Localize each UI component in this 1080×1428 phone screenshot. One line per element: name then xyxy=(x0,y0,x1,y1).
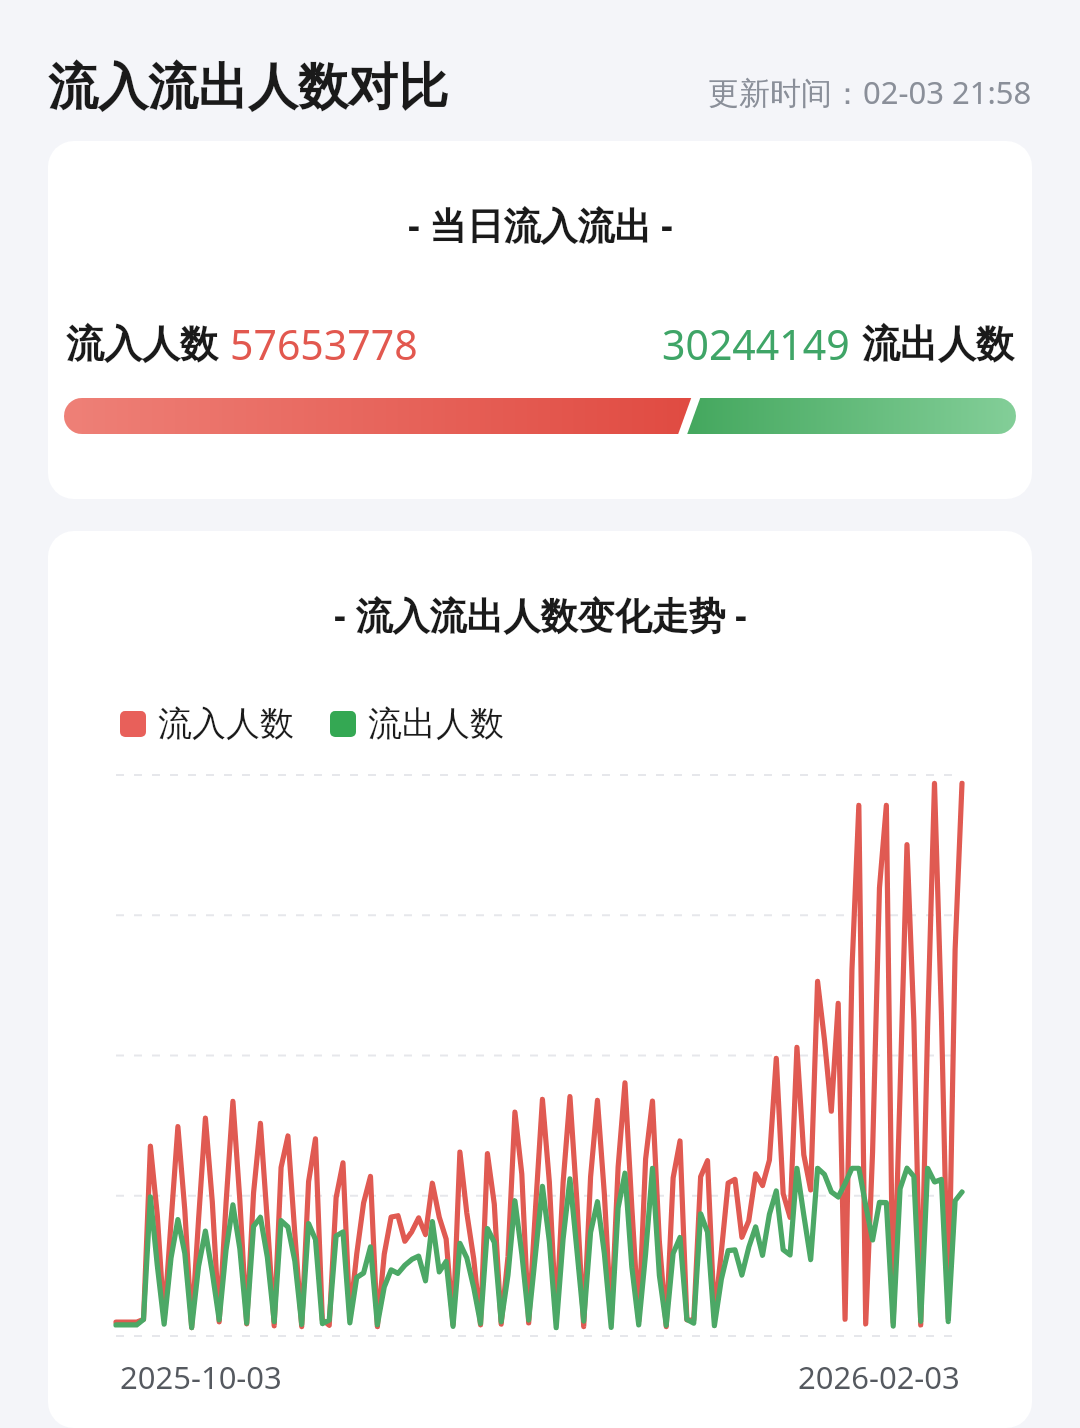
button[interactable]: 流入流出人数对比 xyxy=(48,56,448,119)
button[interactable]: - 流入流出人数变化走势 - xyxy=(48,531,1032,1428)
other: 流入流出人数变化走势折线图 xyxy=(116,775,962,1336)
staticText: 流出人数 xyxy=(368,702,504,745)
staticText: 流入人数 xyxy=(66,320,218,368)
button[interactable]: - 当日流入流出 - xyxy=(48,141,1032,499)
staticText: 流出人数 xyxy=(862,320,1014,368)
staticText: 57653778 xyxy=(230,316,418,372)
staticText: 流入流出人数对比 xyxy=(48,56,448,119)
staticText: 更新时间：02-03 21:58 xyxy=(708,71,1032,113)
staticText: - 流入流出人数变化走势 - xyxy=(334,589,747,640)
staticText: 2026-02-03 xyxy=(798,1356,960,1398)
staticText: - 当日流入流出 - xyxy=(408,199,673,250)
staticText: 流入人数 xyxy=(158,702,294,745)
staticText: 30244149 xyxy=(662,316,850,372)
staticText: 2025-10-03 xyxy=(120,1356,282,1398)
